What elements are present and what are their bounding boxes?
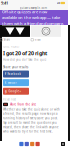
- staticText: Tap a result to revisit the questions yo…: [3, 121, 57, 124]
- staticText: 9:41: [1, 0, 8, 6]
- staticText: f: [5, 72, 6, 76]
- staticText: Google+: [8, 89, 21, 93]
- staticText: QUIZ RESULT: [3, 45, 19, 48]
- staticText: LTE: [57, 1, 60, 5]
- staticText: More from the site: [10, 103, 37, 106]
- staticText: running history of every score you post.: [3, 116, 58, 120]
- staticText: Share: [3, 38, 10, 41]
- button[interactable]: Messenger: [25, 142, 29, 146]
- staticText: Share your results: [3, 65, 28, 69]
- staticText: missed, then share the link with anyone: [3, 125, 59, 129]
- button[interactable]: f: [3, 70, 29, 77]
- staticText: quizzes.example.com: [19, 6, 46, 10]
- staticText: Twitter: [7, 81, 16, 84]
- button[interactable]: Reddit: [30, 142, 34, 146]
- staticText: How did you do? Take the quiz: [3, 58, 46, 61]
- button[interactable]: t: [3, 79, 29, 86]
- button[interactable]: Off-site quizzes are now: [0, 10, 68, 25]
- button[interactable]: Pinterest: [35, 142, 40, 146]
- staticText: available on the web app — take: [2, 15, 60, 20]
- staticText: Off-site quizzes are now: [2, 9, 47, 14]
- staticText: them with a friend and compare.: [2, 21, 64, 26]
- staticText: Whether you take the quiz alone or with: [3, 108, 60, 111]
- staticText: I got 20 of 20 right: [3, 49, 47, 57]
- staticText: who wants to try it for the first time.: [3, 130, 53, 133]
- staticText: g: [5, 89, 7, 93]
- button[interactable]: Mail: [19, 142, 23, 146]
- staticText: a friend, the results page now keeps a: [3, 112, 57, 115]
- button[interactable]: More: [61, 142, 65, 146]
- staticText: Facebook: [7, 72, 20, 76]
- staticText: View: [34, 38, 40, 41]
- button[interactable]: g: [3, 88, 29, 95]
- staticText: t: [5, 81, 6, 84]
- button[interactable]: Share: [0, 38, 30, 41]
- button[interactable]: View: [31, 38, 61, 41]
- staticText: Read next: [3, 98, 16, 101]
